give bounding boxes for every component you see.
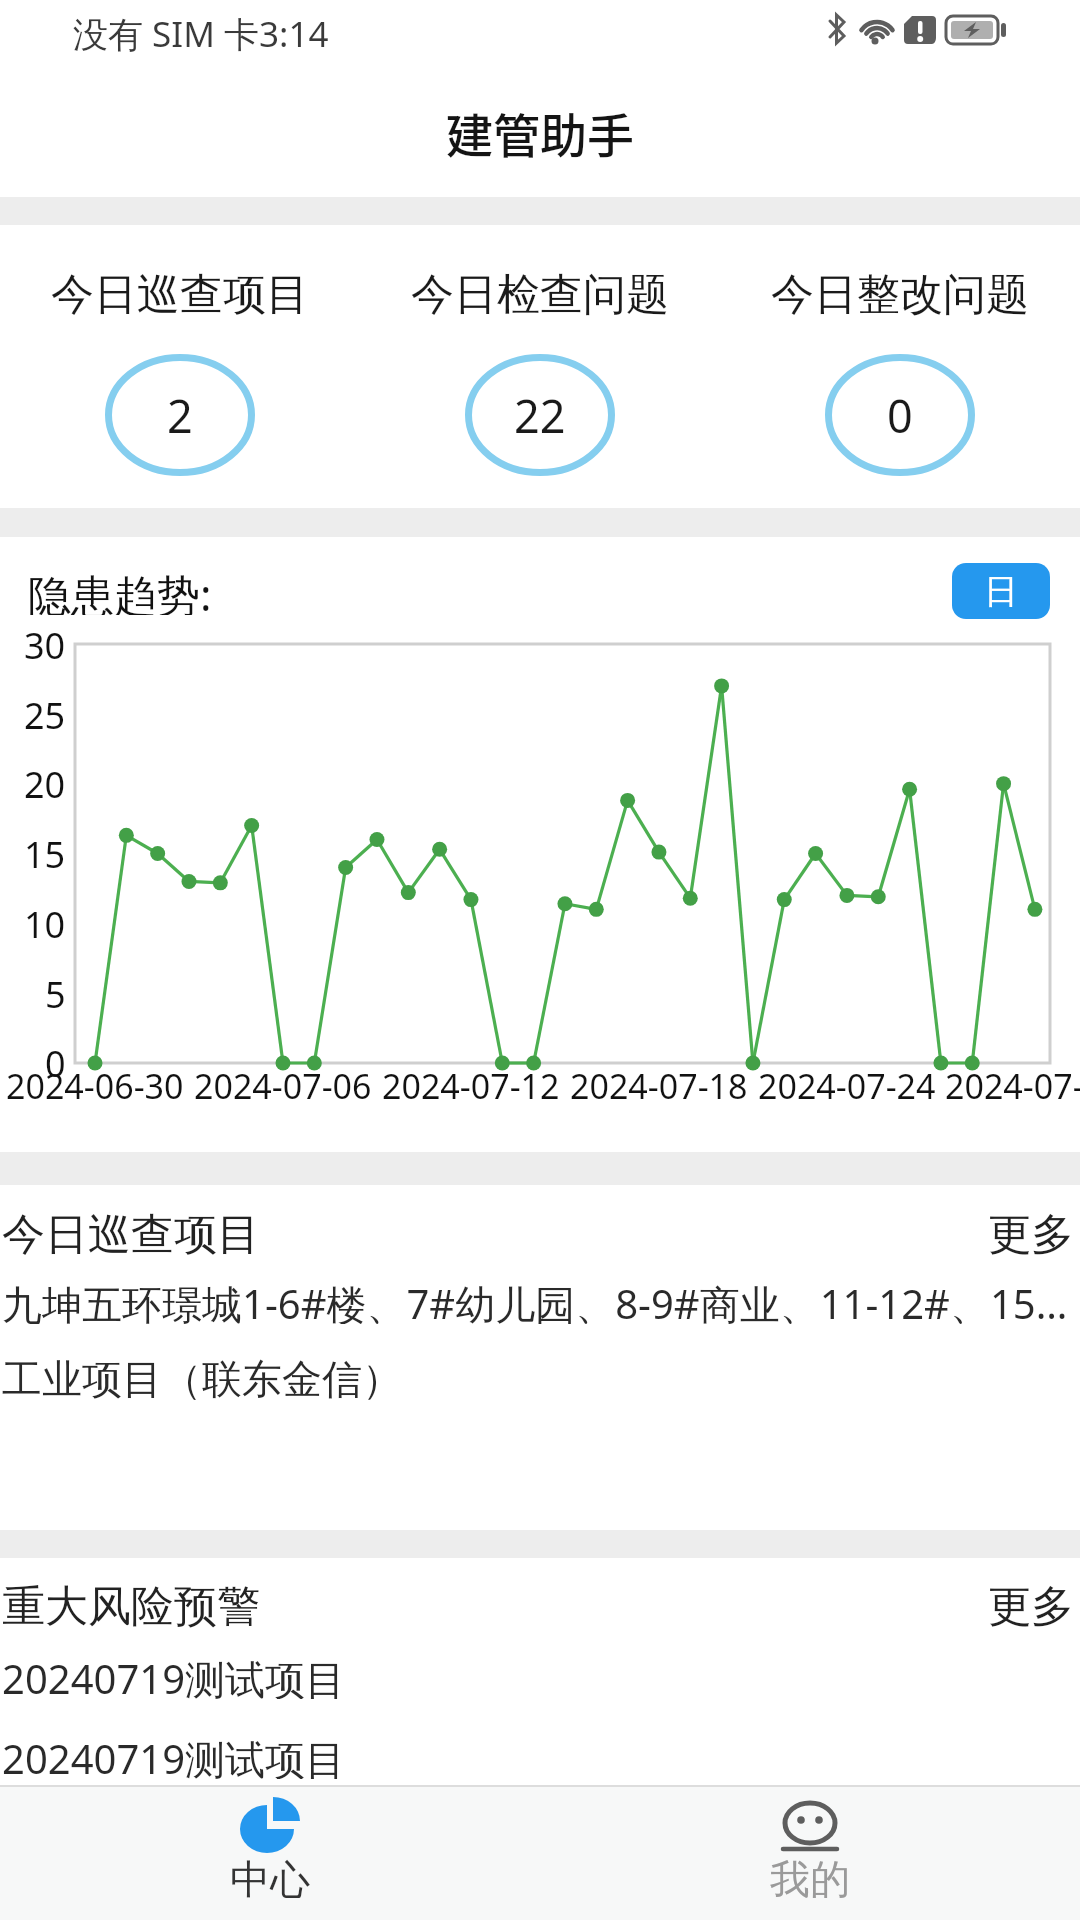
staticText: 0 bbox=[45, 1039, 66, 1087]
staticText: 2024-06-30 bbox=[6, 1063, 184, 1105]
staticText: 今日检查问题 bbox=[411, 268, 669, 320]
staticText: 更多 bbox=[988, 1580, 1074, 1630]
staticText: 建管助手 bbox=[446, 98, 634, 160]
staticText: 20240719测试项目 bbox=[2, 1731, 346, 1779]
staticText: 今日整改问题 bbox=[771, 268, 1029, 320]
button[interactable]: 工业项目（联东金信） bbox=[2, 1354, 1080, 1402]
button[interactable]: 日 bbox=[952, 563, 1050, 619]
button[interactable]: 更多 bbox=[988, 1208, 1080, 1258]
staticText: 30 bbox=[24, 621, 66, 669]
staticText: 我的 bbox=[770, 1854, 850, 1904]
button[interactable]: 20240719测试项目 bbox=[2, 1651, 1080, 1699]
button[interactable]: 20240719测试项目 bbox=[2, 1731, 1080, 1779]
staticText: 2024-07-… bbox=[945, 1063, 1080, 1105]
staticText: 中心 bbox=[230, 1854, 310, 1904]
button[interactable]: 九坤五环璟城1-6#楼、7#幼儿园、8-9#商业、11-12#、15… bbox=[2, 1276, 1080, 1324]
button[interactable]: 0 bbox=[825, 354, 975, 476]
button[interactable]: 22 bbox=[465, 354, 615, 476]
button[interactable]: 更多 bbox=[988, 1580, 1080, 1630]
staticText: 2 bbox=[167, 385, 193, 446]
staticText: 工业项目（联东金信） bbox=[2, 1354, 402, 1402]
staticText: 更多 bbox=[988, 1208, 1074, 1258]
staticText: 25 bbox=[24, 691, 66, 739]
staticText: 没有 SIM 卡3:14 bbox=[73, 10, 329, 56]
staticText: 2024-07-12 bbox=[382, 1063, 560, 1105]
staticText: 2024-07-18 bbox=[570, 1063, 748, 1105]
staticText: 2024-07-24 bbox=[758, 1063, 936, 1105]
staticText: 15 bbox=[24, 830, 66, 878]
staticText: 0 bbox=[887, 385, 913, 446]
staticText: 隐患趋势: bbox=[28, 565, 212, 615]
staticText: 10 bbox=[24, 900, 66, 948]
staticText: 5 bbox=[45, 970, 66, 1018]
button[interactable]: 2 bbox=[105, 354, 255, 476]
staticText: 今日巡查项目 bbox=[2, 1208, 260, 1258]
button[interactable]: 中心 bbox=[190, 1785, 350, 1920]
button[interactable]: 我的 bbox=[730, 1785, 890, 1920]
staticText: 日 bbox=[984, 570, 1018, 613]
staticText: 22 bbox=[514, 385, 566, 446]
staticText: 2024-07-06 bbox=[194, 1063, 372, 1105]
staticText: 重大风险预警 bbox=[2, 1580, 260, 1630]
staticText: 九坤五环璟城1-6#楼、7#幼儿园、8-9#商业、11-12#、15… bbox=[2, 1276, 1068, 1324]
staticText: 今日巡查项目 bbox=[51, 268, 309, 320]
staticText: 20240719测试项目 bbox=[2, 1651, 346, 1699]
staticText: 20 bbox=[24, 760, 66, 808]
